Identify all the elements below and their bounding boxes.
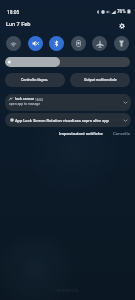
button[interactable]: App Lock Screen Rotation visualizza sopr… <box>5 113 131 127</box>
button[interactable]: Settings <box>116 20 128 32</box>
button[interactable]: Output multimediale <box>70 73 130 87</box>
button[interactable]: lock sensor <box>5 94 131 111</box>
button[interactable]: Flashlight <box>114 36 129 51</box>
button[interactable]: Bluetooth <box>49 36 64 51</box>
staticText: Cancella <box>113 131 130 136</box>
button[interactable]: Controllo dispos. <box>5 73 65 87</box>
button[interactable]: Impostazioni notifiche <box>57 129 105 138</box>
button[interactable]: Wi-Fi <box>6 36 21 51</box>
button[interactable]: Brightness <box>5 57 130 67</box>
staticText: Lun 7 Feb <box>6 21 31 28</box>
staticText: Output multimediale <box>84 78 117 82</box>
staticText: Controllo dispos. <box>21 78 49 82</box>
button[interactable]: Mute <box>28 36 43 51</box>
staticText: 18:04 <box>35 98 43 102</box>
staticText: open app to manage <box>9 102 40 106</box>
staticText: App Lock Screen Rotation visualizza sopr… <box>15 118 115 123</box>
button[interactable]: Expand notification <box>121 98 130 107</box>
button[interactable]: Cancella <box>111 129 132 138</box>
button[interactable]: Expand notification <box>121 116 130 125</box>
button[interactable]: Airplane mode <box>92 36 107 51</box>
staticText: Impostazioni notifiche <box>59 131 103 136</box>
staticText: motorola <box>57 288 79 293</box>
staticText: lock sensor <box>15 97 35 101</box>
staticText: 76% <box>117 9 126 14</box>
staticText: 18:05 <box>7 10 20 16</box>
button[interactable]: Screen cast <box>71 36 86 51</box>
